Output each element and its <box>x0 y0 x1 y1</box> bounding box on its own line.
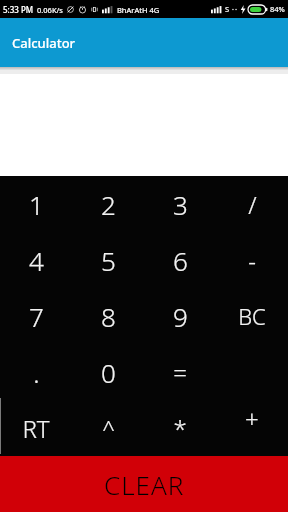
button[interactable]: 8 <box>72 288 144 344</box>
staticText: . <box>33 355 40 390</box>
button[interactable]: 1 <box>0 176 72 232</box>
staticText: = <box>173 356 187 389</box>
staticText: / <box>248 188 257 221</box>
button[interactable]: . <box>0 344 72 400</box>
staticText: Calculator <box>12 34 76 52</box>
staticText: CLEAR <box>104 467 185 502</box>
staticText: 6 <box>173 243 188 278</box>
staticText: 4 <box>29 243 44 278</box>
staticText: * <box>173 412 187 445</box>
button[interactable]: Multiply <box>144 400 216 456</box>
button[interactable]: 3 <box>144 176 216 232</box>
staticText: 5 <box>101 243 116 278</box>
staticText: 2 <box>101 187 116 222</box>
button[interactable]: Equals <box>144 344 216 400</box>
staticText: RT <box>22 412 50 445</box>
staticText: 5:33 PM <box>3 4 34 15</box>
button[interactable]: 0 <box>72 344 144 400</box>
staticText: 3 <box>173 187 188 222</box>
button[interactable]: Divide <box>216 176 288 232</box>
staticText: 84% <box>270 4 285 14</box>
button[interactable]: 4 <box>0 232 72 288</box>
staticText: 9 <box>173 299 188 334</box>
staticText: BhArAtH 4G <box>117 5 160 15</box>
staticText: + <box>245 402 259 435</box>
button[interactable]: Minus <box>216 232 288 288</box>
staticText: 0.06K/s <box>37 5 63 15</box>
staticText: 7 <box>29 299 44 334</box>
staticText: BC <box>238 301 266 331</box>
staticText: S <box>225 4 230 14</box>
staticText: 1 <box>29 187 44 222</box>
staticText: ^ <box>102 413 115 443</box>
button[interactable]: Plus <box>216 400 288 456</box>
button[interactable]: Power <box>72 400 144 456</box>
button[interactable]: BC <box>216 288 288 344</box>
button[interactable]: CLEAR <box>0 456 288 512</box>
button[interactable]: 9 <box>144 288 216 344</box>
button[interactable]: 5 <box>72 232 144 288</box>
staticText: 0 <box>101 355 116 390</box>
button[interactable]: 2 <box>72 176 144 232</box>
staticText: - <box>248 244 256 277</box>
button[interactable]: 6 <box>144 232 216 288</box>
staticText: 8 <box>101 299 116 334</box>
button[interactable]: 7 <box>0 288 72 344</box>
button[interactable]: Square root <box>0 400 72 456</box>
